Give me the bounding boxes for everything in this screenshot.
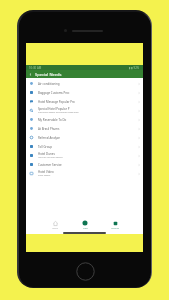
button[interactable]: Special Hotel Popular P xyxy=(26,106,143,115)
staticText: Home xyxy=(52,227,58,230)
button[interactable]: Toll Group xyxy=(26,142,143,151)
button[interactable]: At Brasil Phums xyxy=(26,124,143,133)
staticText: Save more details and proper usage infor xyxy=(38,111,79,114)
staticText: Hotel Message Popular Pro xyxy=(38,100,75,104)
button[interactable]: Trips xyxy=(70,219,100,231)
staticText: Special Needs xyxy=(35,72,62,77)
staticText: Trips xyxy=(83,227,88,230)
button[interactable]: Account xyxy=(100,219,130,231)
staticText: Hotel Video xyxy=(38,170,54,174)
button[interactable]: Back xyxy=(26,70,35,78)
button[interactable]: Air conditioning xyxy=(26,79,143,88)
staticText: Use it as you may need it xyxy=(38,156,63,159)
staticText: Hotel Dunes xyxy=(38,152,55,156)
button[interactable]: My Reservable To Do xyxy=(26,115,143,124)
staticText: At Brasil Phums xyxy=(38,127,60,131)
staticText: Referral Analyze xyxy=(38,136,60,140)
staticText: Customer Service xyxy=(38,163,62,167)
staticText: ▮ ▮ 92% xyxy=(129,66,140,70)
button[interactable]: Hotel Video xyxy=(26,169,143,178)
staticText: Short details xyxy=(38,174,51,177)
staticText: Air conditioning xyxy=(38,82,60,86)
button[interactable]: Home xyxy=(40,219,70,231)
button[interactable]: Hotel Message Popular Pro xyxy=(26,97,143,106)
staticText: Baggage Customs Proc xyxy=(38,91,70,95)
staticText: Toll Group xyxy=(38,145,52,149)
button[interactable]: Hotel Dunes xyxy=(26,151,143,160)
staticText: My Reservable To Do xyxy=(38,118,67,122)
button[interactable]: Referral Analyze xyxy=(26,133,143,142)
staticText: Account xyxy=(111,227,119,230)
button[interactable]: Baggage Customs Proc xyxy=(26,88,143,97)
button[interactable]: Customer Service xyxy=(26,160,143,169)
staticText: Special Hotel Popular P xyxy=(38,107,70,111)
staticText: 10:30 AM xyxy=(29,66,42,70)
